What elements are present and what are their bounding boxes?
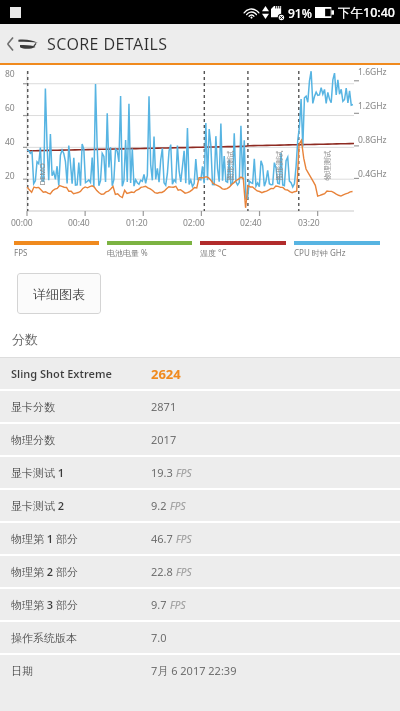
staticText: 7.0 [151,630,167,645]
staticText: 00:00 [11,217,33,229]
staticText: 物理测试 [322,150,331,180]
staticText: FPS [170,499,186,513]
staticText: FPS [176,532,192,546]
staticText: FPS [176,565,192,579]
staticText: 2017 [151,432,177,447]
staticText: CPU 时钟 GHz [294,247,346,258]
staticText: 20 [5,170,15,182]
staticText: 操作系统版本 [11,631,151,645]
button[interactable]: 详细图表 [17,273,101,314]
staticText: 详细图表 [33,286,85,302]
staticText: 60 [5,102,15,114]
staticText: 温度 °C [200,247,227,258]
staticText: 7月 6 2017 22:39 [151,663,237,678]
staticText: 电池电量 % [107,247,148,258]
staticText: 00:40 [68,217,90,229]
staticText: 2871 [151,399,177,414]
staticText: 02:00 [183,217,205,229]
staticText: 显卡分数 [11,400,151,414]
staticText: 9.7 [151,597,167,612]
staticText: 1.6GHz [358,66,387,78]
staticText: 0.4GHz [358,168,387,180]
staticText: Sling Shot Extreme [11,366,151,381]
staticText: 03:20 [298,217,320,229]
button[interactable]: 显卡分数 [0,391,400,422]
staticText: 分数 [12,331,38,347]
staticText: FPS [14,247,28,258]
staticText: 物理分数 [11,433,151,447]
staticText: 40 [5,136,15,148]
staticText: 2624 [151,365,181,383]
button[interactable]: 日期 [0,655,400,686]
staticText: 日期 [11,664,151,678]
button[interactable]: Back [0,24,400,63]
staticText: 显卡测试 1 [11,465,151,480]
button[interactable]: Sling Shot Extreme [0,358,400,389]
button[interactable]: 物理分数 [0,424,400,455]
staticText: 0.8GHz [358,134,387,146]
staticText: 显卡测试 2 [11,498,151,513]
button[interactable]: 显卡测试 2 [0,490,400,521]
staticText: 02:40 [240,217,262,229]
button[interactable]: 物理第 2 部分 [0,556,400,587]
staticText: 1.2GHz [358,100,387,112]
button[interactable]: 物理第 1 部分 [0,523,400,554]
staticText: 01:20 [126,217,148,229]
staticText: 物理第 2 部分 [11,564,151,579]
staticText: 图形测试 [274,150,283,180]
staticText: 19.3 [151,465,173,480]
button[interactable]: 显卡测试 1 [0,457,400,488]
button[interactable]: 物理第 3 部分 [0,589,400,620]
staticText: 9.2 [151,498,167,513]
staticText: 物理第 1 部分 [11,531,151,546]
staticText: SCORE DETAILS [47,33,168,55]
staticText: 物理第 3 部分 [11,597,151,612]
staticText: 下午10:40 [338,4,396,21]
staticText: FPS [170,598,186,612]
staticText: 图形测试 [225,150,234,180]
staticText: 22.8 [151,564,173,579]
button[interactable]: 操作系统版本 [0,622,400,653]
staticText: 80 [5,68,15,80]
staticText: 91% [288,5,312,21]
staticText: 46.7 [151,531,173,546]
staticText: FPS [176,466,192,480]
staticText: DEMO [36,162,46,185]
